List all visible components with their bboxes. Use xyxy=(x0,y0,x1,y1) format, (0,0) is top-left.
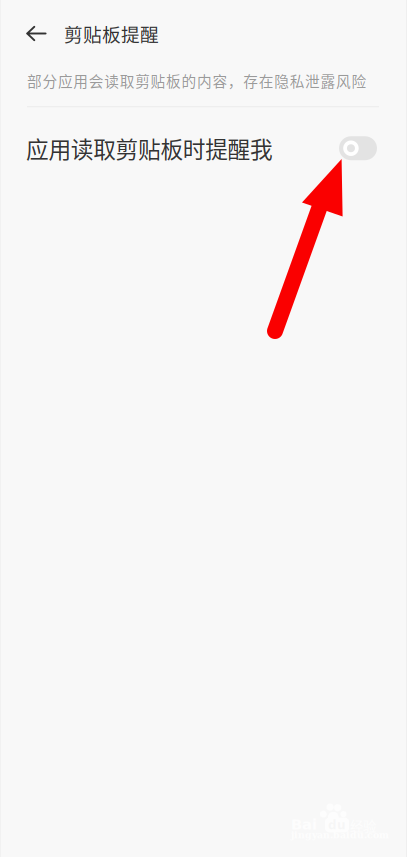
button[interactable]: 返回 剪贴板提醒 xyxy=(0,0,175,62)
staticText: 剪贴板提醒 xyxy=(64,20,159,47)
button[interactable]: 应用读取剪贴板时提醒我，关闭 xyxy=(339,136,377,160)
staticText: 部分应用会读取剪贴板的内容，存在隐私泄露风险 xyxy=(27,70,366,91)
staticText: 应用读取剪贴板时提醒我 xyxy=(26,132,273,165)
button[interactable]: 应用读取剪贴板时提醒我 xyxy=(0,107,407,189)
